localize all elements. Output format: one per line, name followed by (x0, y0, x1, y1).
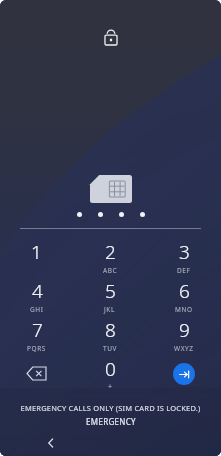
staticText: 5 (105, 278, 116, 304)
button[interactable]: 6 (147, 276, 221, 315)
staticText: 4 (32, 278, 43, 304)
staticText: 2 (105, 239, 116, 265)
staticText: + (108, 382, 113, 392)
button[interactable]: 4 (0, 276, 73, 315)
staticText: TUV (103, 344, 118, 353)
staticText: ABC (103, 266, 118, 275)
staticText: 6 (179, 278, 190, 304)
staticText: 9 (179, 317, 190, 343)
staticText: 3 (179, 239, 190, 265)
staticText: JKL (104, 305, 116, 314)
staticText: DEF (177, 266, 191, 275)
staticText: EMERGENCY CALLS ONLY (SIM CARD IS LOCKED… (0, 403, 221, 413)
button[interactable]: Enter (173, 363, 195, 385)
button[interactable]: 2 (73, 237, 147, 276)
staticText: 7 (32, 317, 43, 343)
button[interactable]: 5 (73, 276, 147, 315)
staticText: PQRS (27, 344, 47, 353)
staticText: GHI (30, 305, 44, 314)
staticText: WXYZ (174, 344, 194, 353)
button[interactable]: 9 (147, 315, 221, 354)
staticText: 1 (31, 239, 42, 265)
button[interactable]: 3 (147, 237, 221, 276)
button[interactable]: 0 (73, 354, 147, 393)
button[interactable]: 7 (0, 315, 73, 354)
staticText: MNO (175, 305, 193, 314)
staticText: 8 (105, 317, 116, 343)
button[interactable]: Delete (0, 354, 73, 393)
button[interactable]: 8 (73, 315, 147, 354)
button[interactable]: 1 (0, 237, 73, 276)
button[interactable]: EMERGENCY (86, 416, 136, 427)
staticText: 0 (105, 356, 116, 382)
staticText: EMERGENCY (86, 416, 136, 427)
button[interactable]: Back (40, 432, 62, 454)
